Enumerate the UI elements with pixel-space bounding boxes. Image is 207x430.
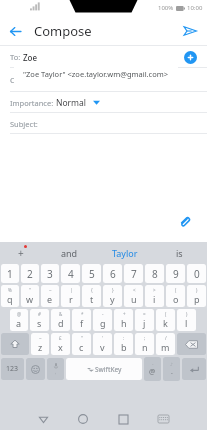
staticText: £ [59, 335, 62, 341]
staticText: Normal [56, 97, 87, 109]
button[interactable]: 0 [187, 264, 206, 283]
staticText: h [121, 317, 127, 329]
button[interactable]: % [1, 285, 19, 307]
button[interactable]: is [152, 242, 207, 263]
button[interactable]: / [156, 333, 175, 355]
button[interactable]: ~ [41, 285, 59, 307]
button[interactable]: To: [0, 46, 207, 68]
button[interactable]: & [51, 309, 70, 331]
button[interactable]: ) [187, 285, 206, 307]
button[interactable]: } [103, 285, 122, 307]
button[interactable]: 4 [61, 264, 80, 283]
staticText: 6 [110, 267, 116, 281]
button[interactable]: > [145, 285, 164, 307]
button[interactable]: < [124, 285, 143, 307]
staticText: { [91, 287, 93, 293]
button[interactable]: 1 [1, 264, 19, 283]
button[interactable]: ; [135, 333, 154, 355]
button[interactable]: Back [23, 408, 63, 430]
staticText: 1 [7, 267, 13, 281]
button[interactable]: Home [63, 408, 103, 430]
button[interactable]: 2 [21, 264, 39, 283]
button[interactable]: + [114, 309, 133, 331]
staticText: ) [186, 311, 188, 317]
button[interactable]: " [21, 285, 39, 307]
staticText: a [16, 317, 22, 329]
staticText: m [161, 341, 170, 353]
button[interactable]: and [42, 242, 97, 263]
staticText: 5 [89, 267, 95, 281]
button[interactable]: : [114, 333, 133, 355]
button[interactable]: " [72, 333, 91, 355]
staticText: is [176, 247, 183, 259]
button[interactable]: @ [10, 309, 28, 331]
button[interactable]: - [93, 309, 112, 331]
staticText: ♪ [170, 362, 173, 367]
button[interactable]: Voice input [47, 358, 64, 380]
button[interactable]: Hide keyboard [143, 408, 183, 430]
button[interactable]: 7 [124, 264, 143, 283]
staticText: > [153, 287, 156, 293]
button[interactable]: # [30, 309, 49, 331]
button[interactable]: = [135, 309, 154, 331]
button[interactable]: Space [66, 358, 142, 380]
staticText: Taylor [112, 247, 138, 259]
button[interactable]: Taylor [97, 242, 152, 263]
staticText: i [153, 293, 156, 305]
button[interactable]: Emoji [26, 358, 45, 380]
button[interactable]: Enter [182, 358, 206, 380]
staticText: q [7, 293, 13, 305]
staticText: v [100, 341, 105, 353]
staticText: # [38, 311, 41, 317]
button[interactable]: | [61, 285, 80, 307]
staticText: } [112, 287, 114, 293]
button[interactable]: Send [175, 16, 205, 46]
button[interactable]: 3 [41, 264, 59, 283]
staticText: @ [17, 311, 22, 317]
staticText: c [79, 341, 84, 353]
button[interactable]: Back [0, 16, 30, 46]
staticText: e [47, 293, 53, 305]
button[interactable]: "Zoe Taylor" <zoe.taylor.wm@gmail.com> [14, 62, 178, 86]
button[interactable]: Backspace [177, 333, 206, 355]
staticText: + [123, 311, 126, 317]
staticText: 10:00 [187, 4, 203, 12]
staticText: s [37, 317, 42, 329]
staticText: ( [165, 311, 167, 317]
staticText: & [59, 311, 63, 317]
staticText: " [81, 335, 83, 341]
button[interactable]: ( [166, 285, 185, 307]
staticText: o [173, 293, 179, 305]
button[interactable]: 6 [103, 264, 122, 283]
button[interactable]: Importance: [0, 92, 207, 113]
button[interactable]: { [82, 285, 101, 307]
button[interactable]: 9 [166, 264, 185, 283]
staticText: ~ [39, 335, 42, 341]
staticText: g [100, 317, 106, 329]
button[interactable]: * [72, 309, 91, 331]
staticText: Compose [34, 22, 92, 40]
button[interactable]: Shift [1, 333, 29, 355]
staticText: y [110, 293, 115, 305]
button[interactable]: Add recipient [184, 51, 197, 64]
button[interactable]: Cc: [0, 68, 207, 92]
button[interactable]: ' [93, 333, 112, 355]
button[interactable]: Add to dictionary [0, 242, 42, 263]
button[interactable]: Attach file [171, 208, 197, 234]
staticText: 123 [6, 364, 19, 374]
button[interactable]: 123 [1, 358, 24, 380]
staticText: - [152, 361, 154, 367]
button[interactable]: ) [177, 309, 196, 331]
button[interactable]: 5 [82, 264, 101, 283]
staticText: Importance: [10, 98, 56, 108]
staticText: Zoe [23, 52, 38, 63]
button[interactable]: Subject: [0, 113, 207, 134]
button[interactable]: £ [51, 333, 70, 355]
button[interactable]: Recents [103, 408, 143, 430]
button[interactable]: - [144, 357, 161, 381]
button[interactable]: ~ [31, 333, 49, 355]
button[interactable]: 8 [145, 264, 164, 283]
staticText: b [121, 341, 127, 353]
button[interactable]: ( [156, 309, 175, 331]
